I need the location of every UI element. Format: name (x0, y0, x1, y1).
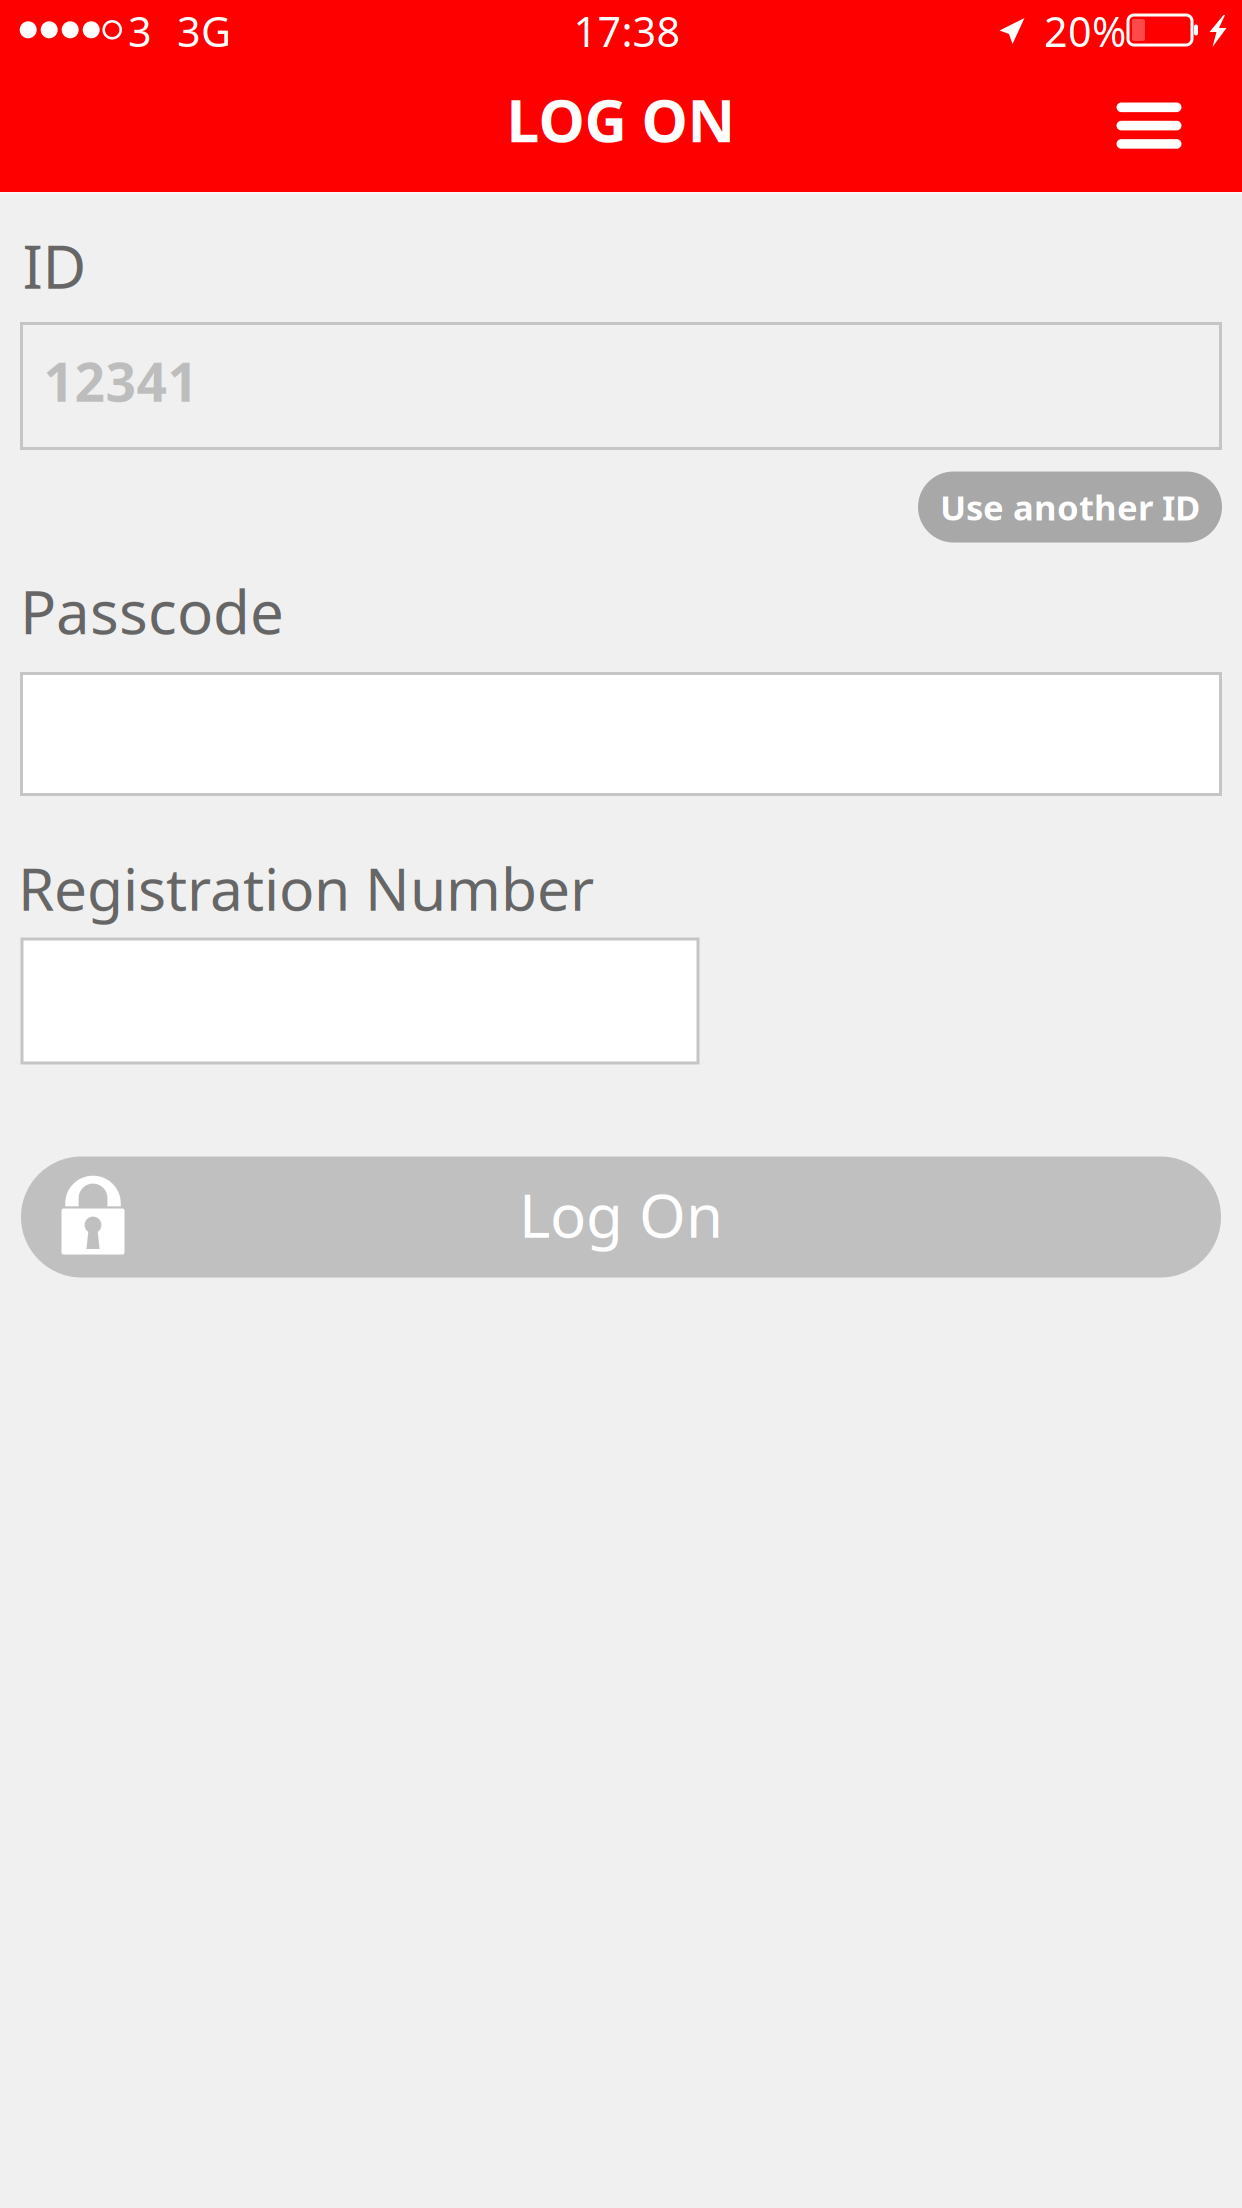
button[interactable]: Log On (21, 1156, 1221, 1277)
staticText: 17:38 (573, 4, 680, 58)
button[interactable]: Registration Number field (22, 939, 698, 1063)
button[interactable]: Passcode field (21, 673, 1220, 794)
staticText: 12341 (43, 346, 198, 416)
button[interactable]: Menu (1087, 62, 1211, 189)
button[interactable]: Use another ID (918, 471, 1222, 542)
staticText: 3 (128, 4, 152, 58)
staticText: 20% (1044, 4, 1126, 58)
staticText: 3G (177, 4, 231, 58)
staticText: Passcode (20, 571, 284, 651)
staticText: ID (23, 226, 87, 305)
staticText: Registration Number (18, 849, 594, 927)
button[interactable]: ID field (21, 323, 1220, 448)
staticText: Log On (519, 1175, 723, 1254)
staticText: Use another ID (940, 484, 1200, 530)
staticText: LOG ON (506, 80, 735, 158)
